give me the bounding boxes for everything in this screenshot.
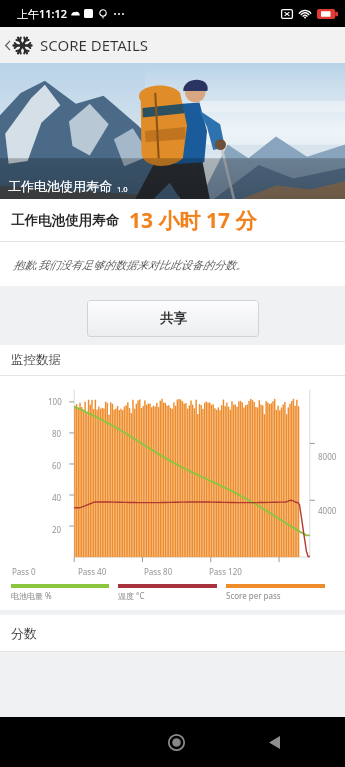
staticText: 40 (52, 492, 62, 503)
staticText: 13 小时 17 分 (129, 206, 257, 235)
staticText: 100 (48, 396, 62, 407)
staticText: 1.0 (117, 184, 128, 194)
button[interactable]: 共享 (87, 300, 259, 337)
staticText: 抱歉,我们没有足够的数据来对比此设备的分数。 (13, 257, 247, 272)
button[interactable]: Home (158, 724, 194, 760)
staticText: Pass 80 (144, 566, 173, 577)
staticText: 工作电池使用寿命 (8, 178, 112, 194)
staticText: 20 (52, 524, 62, 535)
staticText: 分数 (11, 625, 37, 641)
staticText: 温度 °C (118, 590, 145, 601)
staticText: 电池电量 % (11, 590, 52, 601)
staticText: 4000 (318, 505, 337, 516)
staticText: 工作电池使用寿命 (11, 212, 119, 229)
staticText: 上午11:12 (17, 6, 68, 21)
button[interactable]: Back (256, 724, 292, 760)
staticText: Pass 40 (78, 566, 107, 577)
staticText: 8000 (318, 451, 337, 462)
staticText: Pass 120 (209, 566, 242, 577)
button[interactable]: Back, Score details (0, 27, 345, 63)
staticText: 80 (52, 428, 62, 439)
staticText: Score per pass (226, 590, 281, 601)
staticText: 60 (52, 460, 62, 471)
staticText: 共享 (160, 310, 187, 327)
staticText: SCORE DETAILS (40, 35, 149, 55)
staticText: 监控数据 (11, 352, 61, 368)
staticText: Pass 0 (12, 566, 36, 577)
